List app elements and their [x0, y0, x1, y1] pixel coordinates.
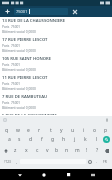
button[interactable]: z: [10, 145, 21, 156]
staticText: FR: [103, 160, 107, 164]
button[interactable]: y: [56, 123, 67, 134]
button[interactable]: ?123: [2, 156, 13, 167]
staticText: n: [65, 147, 69, 154]
staticText: i: [83, 127, 85, 134]
staticText: Paris 75001: [2, 44, 21, 48]
button[interactable]: 11 RUE PIERRE LESCOT: [0, 74, 112, 93]
button[interactable]: d: [25, 134, 36, 145]
button[interactable]: Settings: [86, 156, 94, 167]
button[interactable]: o: [89, 123, 100, 134]
button[interactable]: e: [23, 123, 34, 134]
staticText: b: [55, 147, 59, 154]
button[interactable]: Clear: [70, 7, 79, 16]
staticText: c: [36, 147, 39, 154]
staticText: Paris 75001: [2, 101, 21, 105]
button[interactable]: r: [34, 123, 45, 134]
button[interactable]: s: [14, 134, 25, 145]
button[interactable]: 13 RUE DE LA CHAUSSONNIERE: [0, 17, 112, 36]
staticText: x: [25, 147, 28, 154]
button[interactable]: Home: [38, 169, 49, 180]
staticText: g: [51, 136, 55, 143]
button[interactable]: n: [62, 145, 72, 156]
button[interactable]: v: [42, 145, 52, 156]
button[interactable]: g: [47, 134, 58, 145]
button[interactable]: FR: [100, 156, 110, 167]
button[interactable]: Comma: [13, 156, 20, 167]
button[interactable]: 7 RUE DE RAMBUTEAU: [0, 93, 112, 112]
staticText: ?123: [4, 160, 11, 164]
staticText: p: [104, 127, 108, 134]
staticText: m: [75, 147, 80, 154]
staticText: f: [41, 136, 43, 143]
staticText: 13 RUE DE LA CHAUSSONNIERE: [2, 18, 66, 24]
staticText: 5 RUE DE LA COSSONNERIE: [2, 113, 57, 115]
button[interactable]: k: [80, 134, 91, 145]
button[interactable]: b: [52, 145, 62, 156]
staticText: u: [71, 127, 75, 134]
staticText: v: [46, 147, 49, 154]
button[interactable]: 17 RUE PIERRE LESCOT: [0, 36, 112, 55]
button[interactable]: m: [72, 145, 82, 156]
button[interactable]: j: [69, 134, 80, 145]
button[interactable]: x: [21, 145, 32, 156]
button[interactable]: a: [4, 134, 14, 145]
button[interactable]: h: [58, 134, 69, 145]
staticText: w: [16, 127, 20, 134]
button[interactable]: p: [100, 123, 111, 134]
staticText: 105 RUE SAINT HONORE: [2, 56, 52, 62]
button[interactable]: u: [67, 123, 78, 134]
staticText: h: [62, 136, 66, 143]
staticText: Paris 75001: [2, 63, 21, 67]
staticText: Paris 75001: [2, 25, 21, 29]
button[interactable]: Recents: [63, 169, 74, 180]
staticText: 75001: [16, 9, 28, 14]
staticText: Bâtiment social 0,0000: [2, 68, 36, 72]
staticText: Bâtiment social 0,0000: [2, 49, 36, 53]
button[interactable]: Backspace: [102, 145, 111, 156]
button[interactable]: w: [12, 123, 23, 134]
button[interactable]: Add: [3, 7, 12, 16]
staticText: d: [29, 136, 33, 143]
button[interactable]: Shift: [1, 145, 10, 156]
staticText: l: [96, 136, 98, 143]
staticText: Bâtiment social 0,0000: [2, 87, 36, 91]
staticText: !: [86, 147, 88, 154]
staticText: ,: [16, 159, 18, 164]
staticText: t: [50, 127, 52, 134]
staticText: z: [14, 147, 17, 154]
staticText: 11 RUE PIERRE LESCOT: [2, 75, 48, 81]
staticText: Paris 75001: [2, 82, 21, 86]
staticText: Bâtiment social 0,0000: [2, 106, 36, 110]
button[interactable]: Switch keyboard: [87, 169, 98, 180]
staticText: Bâtiment social 0,0000: [2, 30, 36, 34]
button[interactable]: !: [82, 145, 92, 156]
button[interactable]: l: [91, 134, 102, 145]
button[interactable]: i: [78, 123, 89, 134]
staticText: s: [18, 136, 21, 143]
button[interactable]: 105 RUE SAINT HONORE: [0, 55, 112, 74]
staticText: 7 RUE DE RAMBUTEAU: [2, 94, 48, 100]
button[interactable]: Emoji: [3, 118, 7, 122]
staticText: r: [38, 127, 41, 134]
staticText: 17 RUE PIERRE LESCOT: [2, 37, 48, 43]
staticText: k: [84, 136, 87, 143]
staticText: a: [8, 136, 11, 143]
staticText: j: [74, 136, 76, 143]
staticText: o: [93, 127, 97, 134]
button[interactable]: 75001: [14, 8, 68, 15]
staticText: y: [60, 127, 63, 134]
button[interactable]: More options: [105, 118, 109, 122]
staticText: ?: [96, 147, 99, 154]
button[interactable]: f: [36, 134, 47, 145]
button[interactable]: Back: [14, 169, 25, 180]
button[interactable]: 5 RUE DE LA COSSONNERIE: [0, 112, 112, 116]
button[interactable]: Search: [102, 134, 111, 145]
button[interactable]: t: [45, 123, 56, 134]
button[interactable]: c: [32, 145, 42, 156]
staticText: q: [5, 127, 9, 134]
button[interactable]: q: [1, 123, 12, 134]
staticText: e: [27, 127, 30, 134]
button[interactable]: ?: [92, 145, 102, 156]
